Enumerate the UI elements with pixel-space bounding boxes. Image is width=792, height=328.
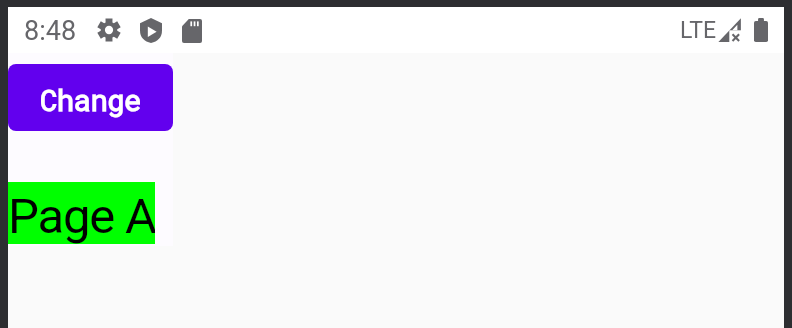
other: Battery bbox=[754, 18, 768, 42]
staticText: 8:48 bbox=[24, 15, 77, 47]
staticText: Change bbox=[40, 81, 141, 119]
other: Play Protect bbox=[140, 18, 162, 43]
staticText: Page A bbox=[8, 188, 155, 244]
other: Mobile signal, no data bbox=[718, 18, 746, 43]
staticText: LTE bbox=[680, 17, 717, 44]
button[interactable]: Change bbox=[8, 64, 173, 131]
other: Settings bbox=[97, 18, 121, 42]
other: SD card bbox=[182, 19, 202, 43]
